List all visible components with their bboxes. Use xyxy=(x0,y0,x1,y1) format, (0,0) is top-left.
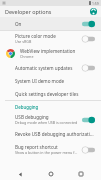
staticText: Developer options xyxy=(5,8,52,15)
button[interactable]: Bug report shortcut xyxy=(0,141,101,158)
button[interactable]: Automatic system updates xyxy=(0,61,101,74)
button[interactable]: Picture color mode xyxy=(0,31,101,46)
button[interactable] xyxy=(81,145,96,155)
button[interactable]: Revoke USB debugging authorizations xyxy=(0,127,101,141)
button[interactable]: Quick settings developer tiles xyxy=(0,87,101,100)
button[interactable] xyxy=(81,34,96,44)
button[interactable]: WebView implementation xyxy=(0,46,101,61)
button[interactable]: Back xyxy=(10,168,30,180)
staticText: 1:59 xyxy=(92,1,99,6)
staticText: Show a button in the power menu for taki… xyxy=(15,150,78,155)
staticText: WebView implementation xyxy=(20,48,76,54)
button[interactable]: Home xyxy=(41,168,61,180)
staticText: Picture color mode xyxy=(15,33,56,39)
staticText: On xyxy=(15,21,22,27)
staticText: Automatic system updates xyxy=(15,65,73,71)
staticText: Chrome xyxy=(20,54,34,59)
button[interactable]: Recent apps xyxy=(71,168,91,180)
button[interactable]: System UI demo mode xyxy=(0,74,101,87)
staticText: Debug mode when USB is connected xyxy=(15,120,78,125)
staticText: Quick settings developer tiles xyxy=(15,91,79,97)
staticText: Revoke USB debugging authorizations xyxy=(15,131,96,137)
staticText: System UI demo mode xyxy=(15,78,65,84)
button[interactable] xyxy=(81,63,96,73)
button[interactable]: On xyxy=(0,17,101,30)
staticText: Use sRGB xyxy=(15,39,32,44)
button[interactable] xyxy=(81,115,96,125)
button[interactable]: Help xyxy=(87,6,99,17)
button[interactable] xyxy=(81,19,96,29)
button[interactable]: USB debugging xyxy=(0,112,101,127)
staticText: USB debugging xyxy=(15,114,49,120)
staticText: Debugging xyxy=(15,104,39,110)
staticText: Bug report shortcut xyxy=(15,144,58,150)
